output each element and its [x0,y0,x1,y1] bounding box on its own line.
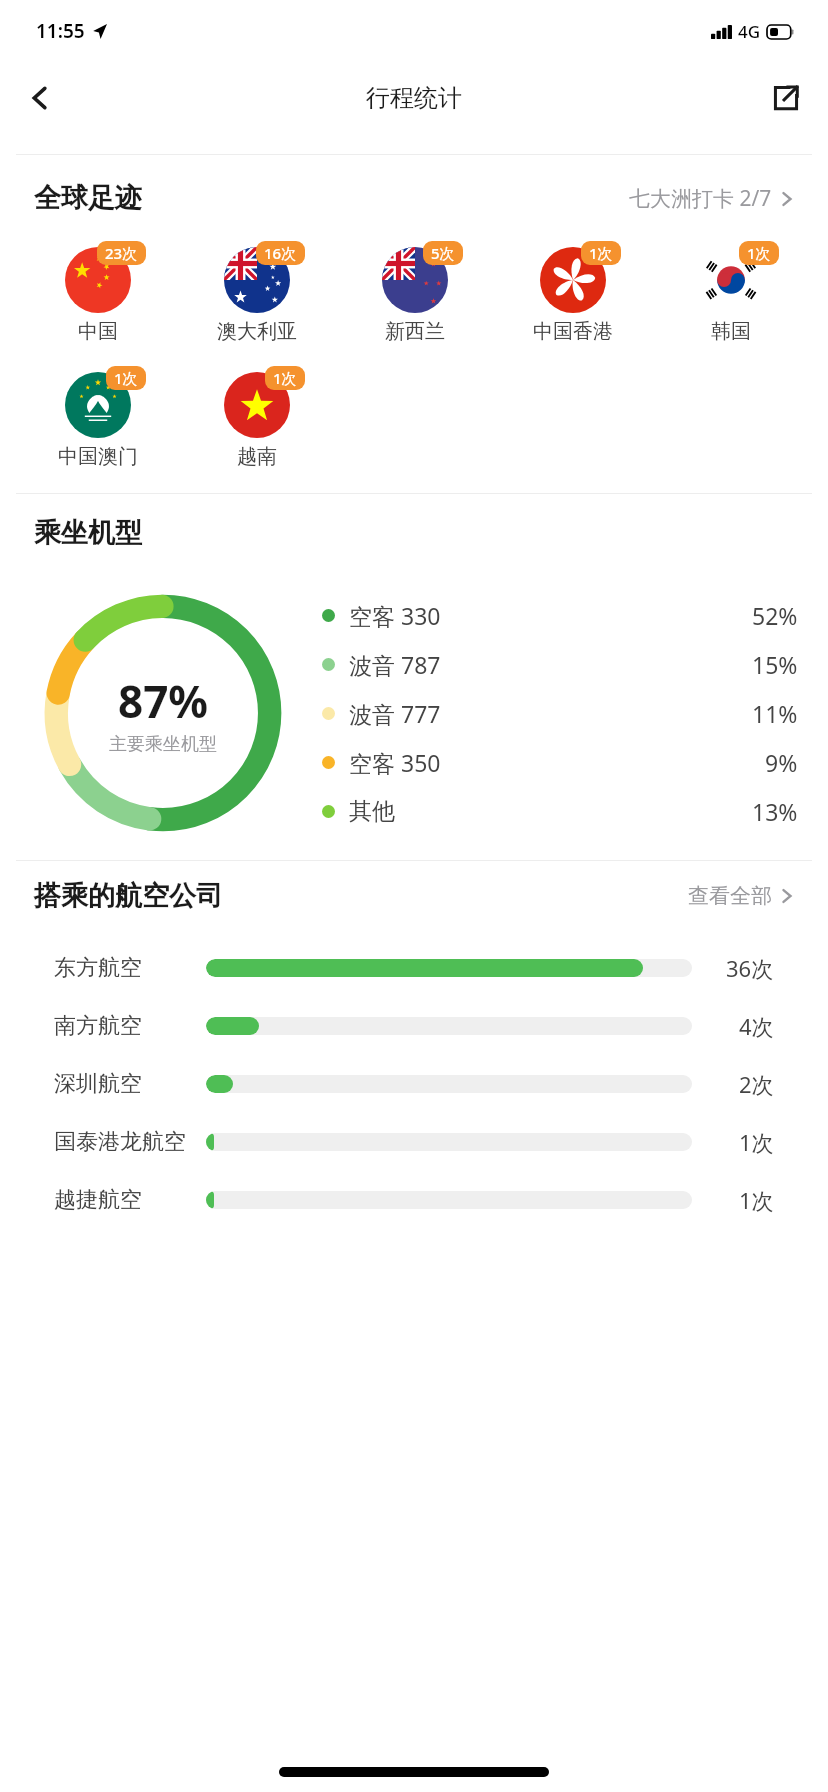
staticText: 1次 [589,243,613,263]
button[interactable]: Share [760,72,812,124]
staticText: 中国香港 [533,319,613,344]
staticText: 2次 [739,1069,774,1099]
staticText: 13% [752,796,798,827]
button[interactable]: 1次 [42,364,154,471]
button[interactable]: 1次 [675,239,787,346]
staticText: 52% [752,600,798,631]
staticText: 1次 [114,368,138,388]
button[interactable]: 23次 [42,239,154,346]
button[interactable]: 1次 [201,364,313,471]
button[interactable]: 南方航空 [54,997,774,1055]
button[interactable]: 七大洲打卡 2/7 [629,184,794,213]
staticText: 查看全部 [688,883,772,909]
staticText: 36次 [726,953,774,983]
staticText: 乘坐机型 [34,516,142,550]
staticText: 其他 [349,797,395,826]
button[interactable]: 东方航空 [54,939,774,997]
staticText: 4G [738,20,761,43]
staticText: 波音 787 [349,649,441,680]
staticText: 新西兰 [385,319,445,344]
staticText: 1次 [739,1185,774,1215]
staticText: 1次 [273,368,297,388]
staticText: 16次 [264,243,297,263]
staticText: 七大洲打卡 2/7 [629,184,772,213]
staticText: 全球足迹 [34,181,142,215]
staticText: 南方航空 [54,1012,142,1040]
staticText: 空客 350 [349,747,441,778]
staticText: 4次 [739,1011,774,1041]
staticText: 深圳航空 [54,1070,142,1098]
staticText: 9% [765,747,798,778]
staticText: 87% [118,671,209,731]
staticText: 主要乘坐机型 [109,733,217,756]
staticText: 越南 [237,444,277,469]
staticText: 国泰港龙航空 [54,1128,186,1156]
button[interactable]: 5次 [359,239,471,346]
staticText: 搭乘的航空公司 [34,879,223,913]
staticText: 韩国 [711,319,751,344]
button[interactable]: 深圳航空 [54,1055,774,1113]
button[interactable]: 国泰港龙航空 [54,1113,774,1171]
staticText: 中国 [78,319,118,344]
staticText: 5次 [431,243,455,263]
button[interactable]: 1次 [517,239,629,346]
staticText: 行程统计 [366,83,462,113]
button[interactable]: 越捷航空 [54,1171,774,1229]
staticText: 中国澳门 [58,444,138,469]
button[interactable]: 16次 [201,239,313,346]
staticText: 越捷航空 [54,1186,142,1214]
staticText: 11:55 [36,18,85,44]
button[interactable]: Back [14,72,66,124]
staticText: 23次 [105,243,138,263]
staticText: 11% [752,698,798,729]
staticText: 15% [752,649,798,680]
staticText: 波音 777 [349,698,441,729]
staticText: 1次 [747,243,771,263]
button[interactable]: 查看全部 [688,883,794,909]
staticText: 空客 330 [349,600,441,631]
staticText: 1次 [739,1127,774,1157]
staticText: 东方航空 [54,954,142,982]
staticText: 澳大利亚 [217,319,297,344]
